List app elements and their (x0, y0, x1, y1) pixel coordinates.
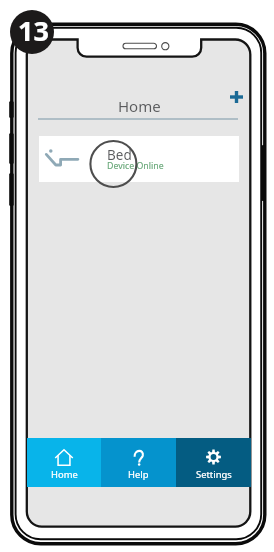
staticText: Help (128, 468, 149, 481)
staticText: Device Online (107, 160, 164, 172)
staticText: Bed (107, 146, 132, 164)
staticText: Home (118, 96, 161, 116)
button[interactable]: Settings (176, 438, 251, 487)
button[interactable]: Help (101, 438, 176, 487)
button[interactable]: Add device (230, 91, 243, 103)
button[interactable]: Home (27, 438, 101, 487)
staticText: Settings (196, 468, 232, 481)
staticText: 13 (18, 12, 49, 49)
button[interactable]: Bed (39, 136, 239, 182)
staticText: Home (51, 468, 78, 481)
